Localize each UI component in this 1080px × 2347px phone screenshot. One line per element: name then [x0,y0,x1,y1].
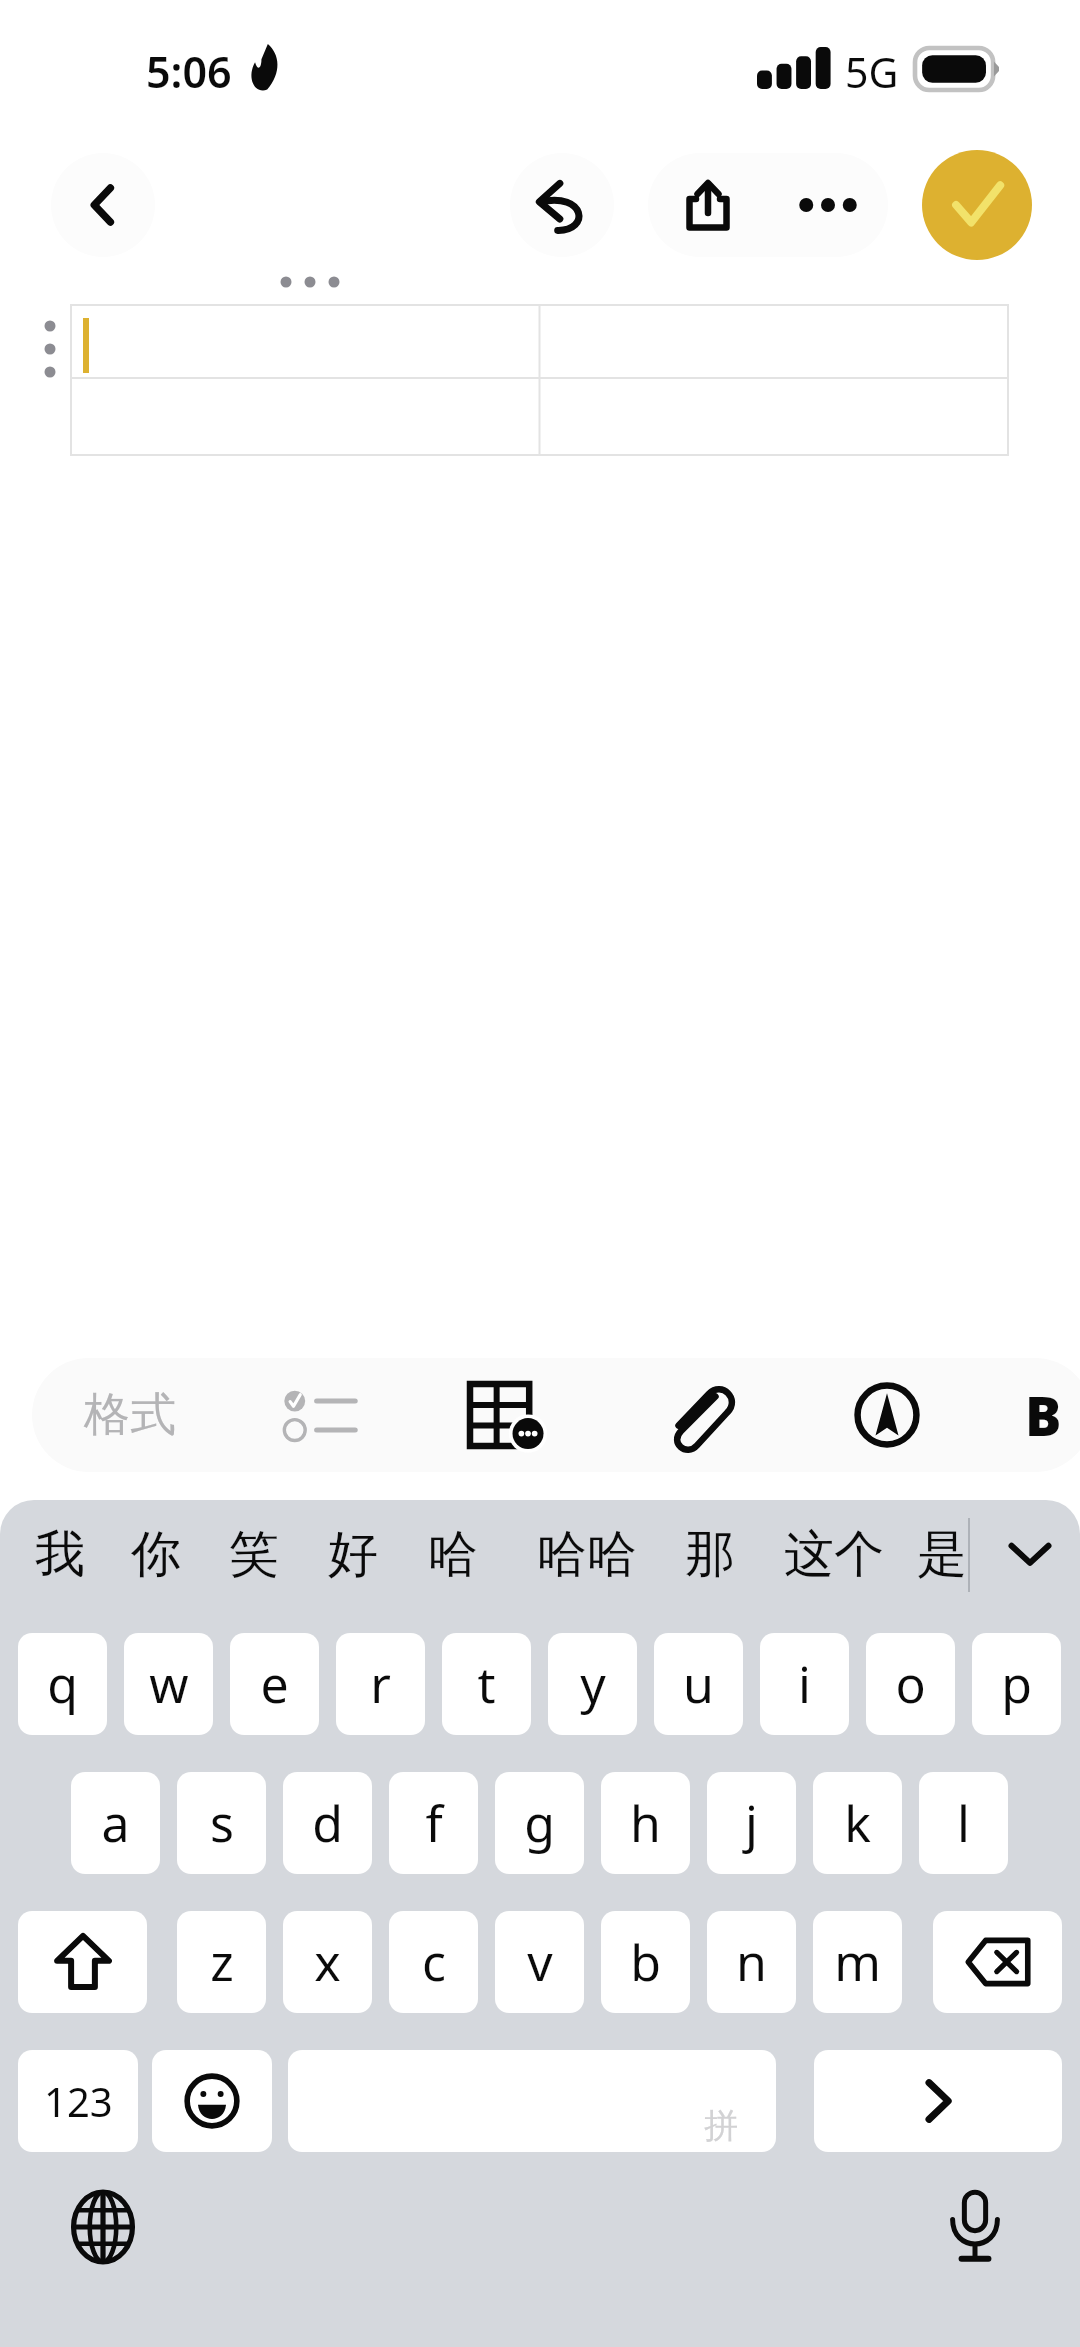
staticText: l [957,1789,970,1857]
staticText: q [47,1650,78,1718]
button[interactable]: Space [288,2050,776,2152]
button[interactable]: More options [768,153,888,257]
staticText: p [1001,1650,1032,1718]
button[interactable]: Hide candidates [985,1508,1075,1600]
button[interactable]: v [495,1911,584,2013]
button[interactable]: Return [814,2050,1062,2152]
button[interactable]: Backspace [933,1911,1062,2013]
staticText: 那 [685,1523,735,1586]
staticText: y [580,1650,606,1718]
staticText: 哈 [428,1523,478,1586]
button[interactable]: 是 [912,1508,972,1600]
button[interactable]: Shift [18,1911,147,2013]
staticText: t [477,1650,496,1718]
button[interactable]: n [707,1911,796,2013]
staticText: n [736,1928,767,1996]
button[interactable]: p [972,1633,1061,1735]
staticText: g [524,1789,555,1857]
staticText: 拼 [704,2104,738,2147]
staticText: b [630,1928,661,1996]
button[interactable]: j [707,1772,796,1874]
staticText: 123 [44,2074,113,2128]
button[interactable]: 好 [315,1508,391,1600]
button[interactable]: w [124,1633,213,1735]
staticText: d [312,1789,343,1857]
button[interactable]: B [997,1358,1080,1472]
staticText: 5:06 [146,42,232,101]
button[interactable]: h [601,1772,690,1874]
staticText: o [895,1650,926,1718]
staticText: a [101,1789,130,1857]
staticText: z [210,1928,234,1996]
button[interactable]: k [813,1772,902,1874]
button[interactable]: Attach file [622,1358,772,1472]
button[interactable]: Emoji [152,2050,272,2152]
staticText: v [527,1928,553,1996]
button[interactable]: i [760,1633,849,1735]
staticText: 我 [35,1523,85,1586]
button[interactable]: y [548,1633,637,1735]
button[interactable]: 那 [672,1508,748,1600]
button[interactable]: b [601,1911,690,2013]
button[interactable]: 格式 [50,1358,210,1472]
staticText: 笑 [229,1523,279,1586]
staticText: m [834,1928,881,1996]
staticText: r [370,1650,391,1718]
button[interactable]: u [654,1633,743,1735]
staticText: 是 [917,1523,967,1586]
staticText: s [210,1789,234,1857]
button[interactable]: Undo [510,153,614,257]
staticText: u [683,1650,714,1718]
button[interactable]: Markup [812,1358,962,1472]
staticText: c [422,1928,446,1996]
button[interactable]: f [389,1772,478,1874]
button[interactable]: 哈哈 [512,1508,662,1600]
staticText: k [844,1789,871,1857]
button[interactable]: e [230,1633,319,1735]
staticText: h [630,1789,661,1857]
button[interactable]: 我 [22,1508,98,1600]
button[interactable]: q [18,1633,107,1735]
button[interactable]: Table [71,305,1008,455]
button[interactable]: Checklist [250,1358,400,1472]
staticText: 5G [845,44,899,100]
button[interactable]: l [919,1772,1008,1874]
button[interactable]: z [177,1911,266,2013]
button[interactable]: Dictate [920,2172,1030,2282]
button[interactable]: m [813,1911,902,2013]
button[interactable]: 你 [118,1508,194,1600]
staticText: 你 [131,1523,181,1586]
button[interactable]: t [442,1633,531,1735]
staticText: j [745,1789,758,1857]
button[interactable]: a [71,1772,160,1874]
button[interactable]: 这个 [768,1508,900,1600]
staticText: 哈哈 [537,1523,637,1586]
staticText: 好 [328,1523,378,1586]
button[interactable]: r [336,1633,425,1735]
button[interactable]: d [283,1772,372,1874]
button[interactable]: Insert table [432,1358,582,1472]
button[interactable]: 笑 [216,1508,292,1600]
staticText: x [314,1928,341,1996]
button[interactable]: Share [648,153,768,257]
staticText: f [425,1789,443,1857]
button[interactable]: s [177,1772,266,1874]
staticText: i [798,1650,811,1718]
button[interactable]: Back [51,153,155,257]
staticText: B [1025,1378,1062,1452]
button[interactable]: g [495,1772,584,1874]
button[interactable]: Done [922,150,1032,260]
button[interactable]: o [866,1633,955,1735]
staticText: e [260,1650,289,1718]
staticText: 格式 [84,1386,176,1444]
staticText: 这个 [784,1523,884,1586]
button[interactable]: Change keyboard [48,2172,158,2282]
button[interactable]: x [283,1911,372,2013]
button[interactable]: c [389,1911,478,2013]
staticText: w [149,1650,189,1718]
button[interactable]: 123 [18,2050,138,2152]
button[interactable]: 哈 [415,1508,491,1600]
